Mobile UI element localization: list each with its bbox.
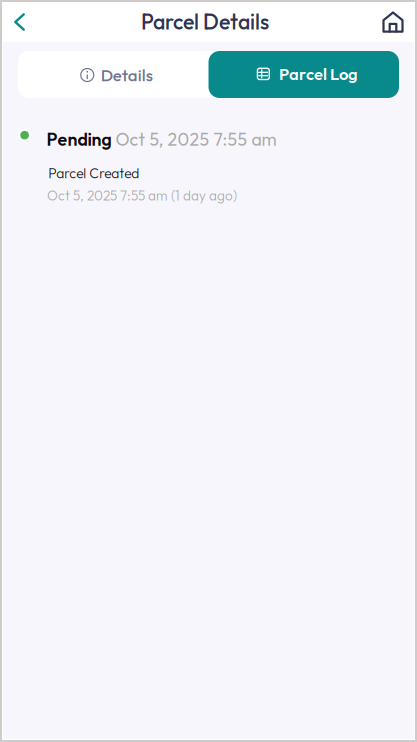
staticText: Pending: [46, 128, 111, 150]
staticText: Oct 5, 2025 7:55 am (1 day ago): [47, 187, 237, 204]
staticText: Details: [101, 64, 153, 86]
staticText: Oct 5, 2025 7:55 am: [111, 128, 276, 150]
staticText: Parcel Log: [279, 63, 358, 84]
staticText: Parcel Details: [141, 8, 269, 35]
button[interactable]: Parcel Log: [208, 51, 399, 98]
button[interactable]: Back: [4, 2, 35, 42]
button[interactable]: Details: [18, 51, 208, 98]
staticText: Parcel Created: [48, 164, 139, 182]
button[interactable]: Home: [377, 2, 408, 42]
